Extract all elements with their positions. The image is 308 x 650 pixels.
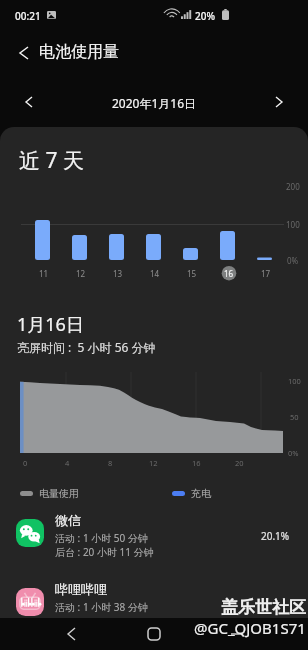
staticText: 20: [235, 458, 244, 468]
staticText: 充电: [191, 487, 211, 500]
button[interactable]: Back: [9, 38, 39, 68]
staticText: 哔哩哔哩: [55, 581, 107, 597]
staticText: @GC_QJOB1S71: [194, 618, 306, 638]
staticText: 14: [150, 268, 160, 279]
staticText: 电量使用: [39, 487, 79, 500]
staticText: 50: [290, 412, 299, 422]
staticText: 0: [23, 458, 28, 468]
button[interactable]: Home: [139, 619, 169, 649]
staticText: 12: [149, 458, 158, 468]
staticText: 13: [113, 268, 123, 279]
staticText: 8: [108, 458, 113, 468]
staticText: 20%: [195, 9, 215, 23]
staticText: 00:21: [15, 9, 41, 23]
staticText: 后台 : 20 小时 11 分钟: [55, 545, 154, 559]
staticText: 0%: [287, 255, 299, 266]
staticText: 12: [76, 268, 86, 279]
staticText: 2020年1月16日: [0, 95, 308, 111]
staticText: 1月16日: [17, 312, 84, 337]
staticText: 100: [288, 376, 301, 386]
button[interactable]: Previous day: [16, 89, 42, 115]
staticText: 电池使用量: [39, 42, 119, 62]
staticText: 20.1%: [261, 529, 290, 543]
staticText: 17: [261, 268, 271, 279]
staticText: 微信: [55, 512, 81, 528]
staticText: 200: [286, 181, 300, 192]
staticText: 活动 : 1 小时 50 分钟: [55, 531, 148, 545]
button[interactable]: Next day: [266, 89, 292, 115]
staticText: 100: [286, 219, 300, 230]
staticText: 活动 : 1 小时 38 分钟: [55, 600, 148, 614]
button[interactable]: Recents: [222, 619, 252, 649]
staticText: 11: [39, 268, 49, 279]
staticText: 4: [65, 458, 70, 468]
staticText: 16: [192, 458, 201, 468]
staticText: 盖乐世社区: [221, 597, 306, 618]
button[interactable]: 哔哩哔哩: [0, 575, 308, 644]
staticText: 0%: [288, 448, 299, 458]
staticText: 16: [224, 268, 234, 279]
button[interactable]: 微信: [0, 506, 308, 575]
staticText: 近 7 天: [19, 146, 84, 175]
staticText: 亮屏时间 : 5 小时 56 分钟: [17, 339, 156, 355]
button[interactable]: Back: [56, 619, 86, 649]
staticText: 15: [187, 268, 197, 279]
